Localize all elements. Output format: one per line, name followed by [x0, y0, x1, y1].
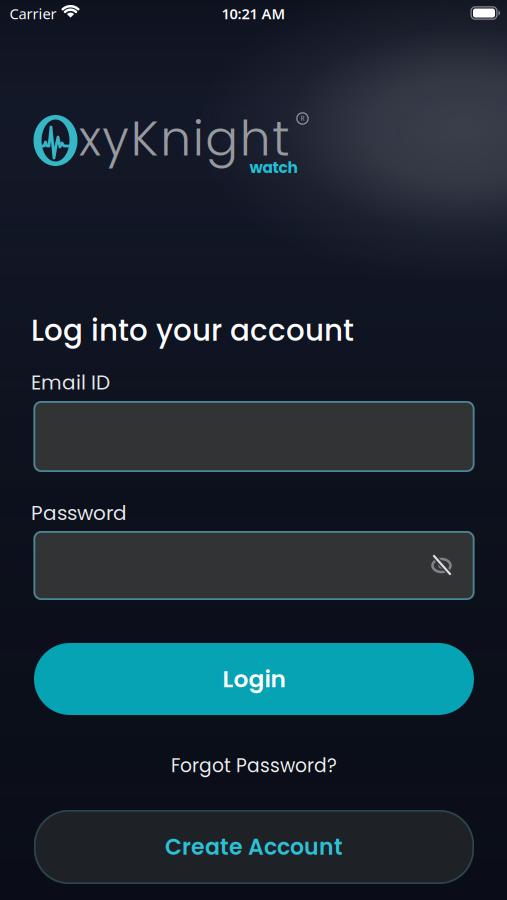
staticText: watch — [249, 157, 297, 178]
button[interactable] — [33, 401, 474, 472]
staticText: Password — [31, 499, 127, 527]
staticText: 10:21 AM — [221, 4, 285, 23]
button[interactable]: Login — [34, 643, 474, 715]
button[interactable]: Forgot Password? — [171, 753, 337, 779]
staticText: Login — [222, 663, 285, 695]
button[interactable]: Show password — [430, 554, 452, 575]
button[interactable]: Create Account — [34, 810, 474, 884]
staticText: R — [300, 114, 304, 123]
staticText: Carrier — [9, 4, 56, 23]
staticText: Email ID — [31, 368, 110, 396]
staticText: Create Account — [165, 832, 343, 862]
staticText: xyKnight — [79, 104, 289, 172]
staticText: Log into your account — [31, 310, 354, 351]
button[interactable] — [33, 531, 474, 600]
staticText: Forgot Password? — [171, 753, 337, 779]
